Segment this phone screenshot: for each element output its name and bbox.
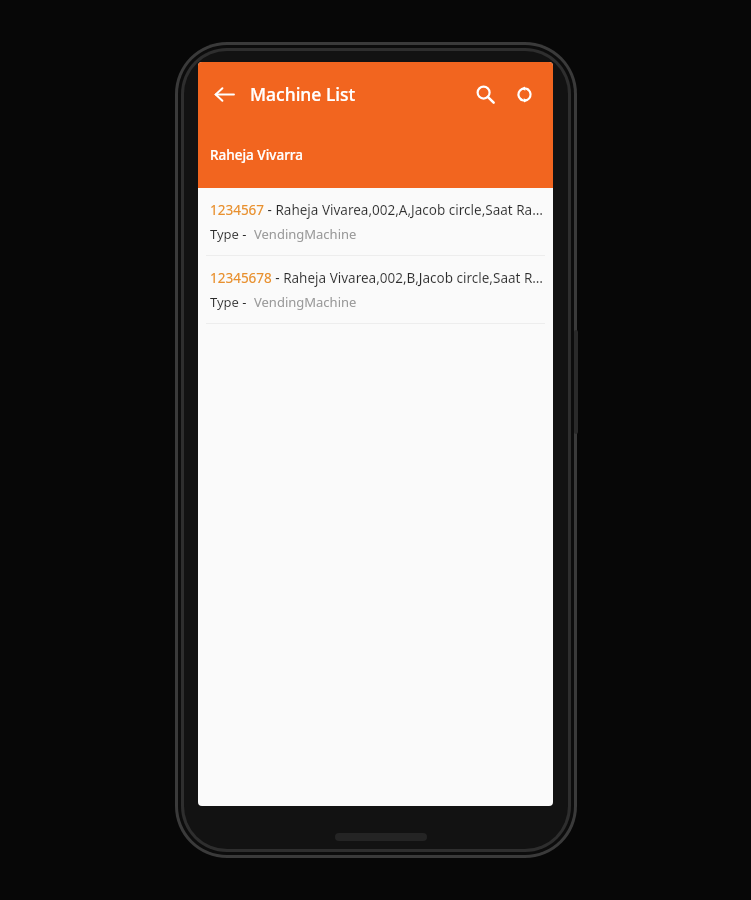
- button[interactable]: Back: [204, 74, 244, 114]
- button[interactable]: Refresh: [505, 75, 543, 113]
- staticText: Machine List: [250, 82, 356, 106]
- button[interactable]: 12345678 - Raheja Vivarea,002,B,Jacob ci…: [198, 256, 553, 323]
- staticText: VendingMachine: [254, 225, 357, 243]
- staticText: 12345678 - Raheja Vivarea,002,B,Jacob ci…: [210, 269, 544, 287]
- button[interactable]: 1234567 - Raheja Vivarea,002,A,Jacob cir…: [198, 188, 553, 255]
- button[interactable]: Search: [466, 75, 504, 113]
- staticText: Type -: [210, 293, 250, 311]
- staticText: 1234567 - Raheja Vivarea,002,A,Jacob cir…: [210, 201, 543, 219]
- staticText: Type -: [210, 225, 250, 243]
- staticText: VendingMachine: [254, 293, 357, 311]
- staticText: Raheja Vivarra: [210, 146, 304, 164]
